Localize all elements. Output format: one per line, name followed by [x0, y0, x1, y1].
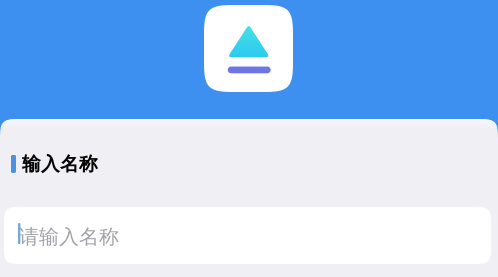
staticText: 输入名称 — [22, 152, 98, 175]
button[interactable]: 请输入名称 — [4, 207, 491, 264]
staticText: 请输入名称 — [19, 224, 119, 249]
